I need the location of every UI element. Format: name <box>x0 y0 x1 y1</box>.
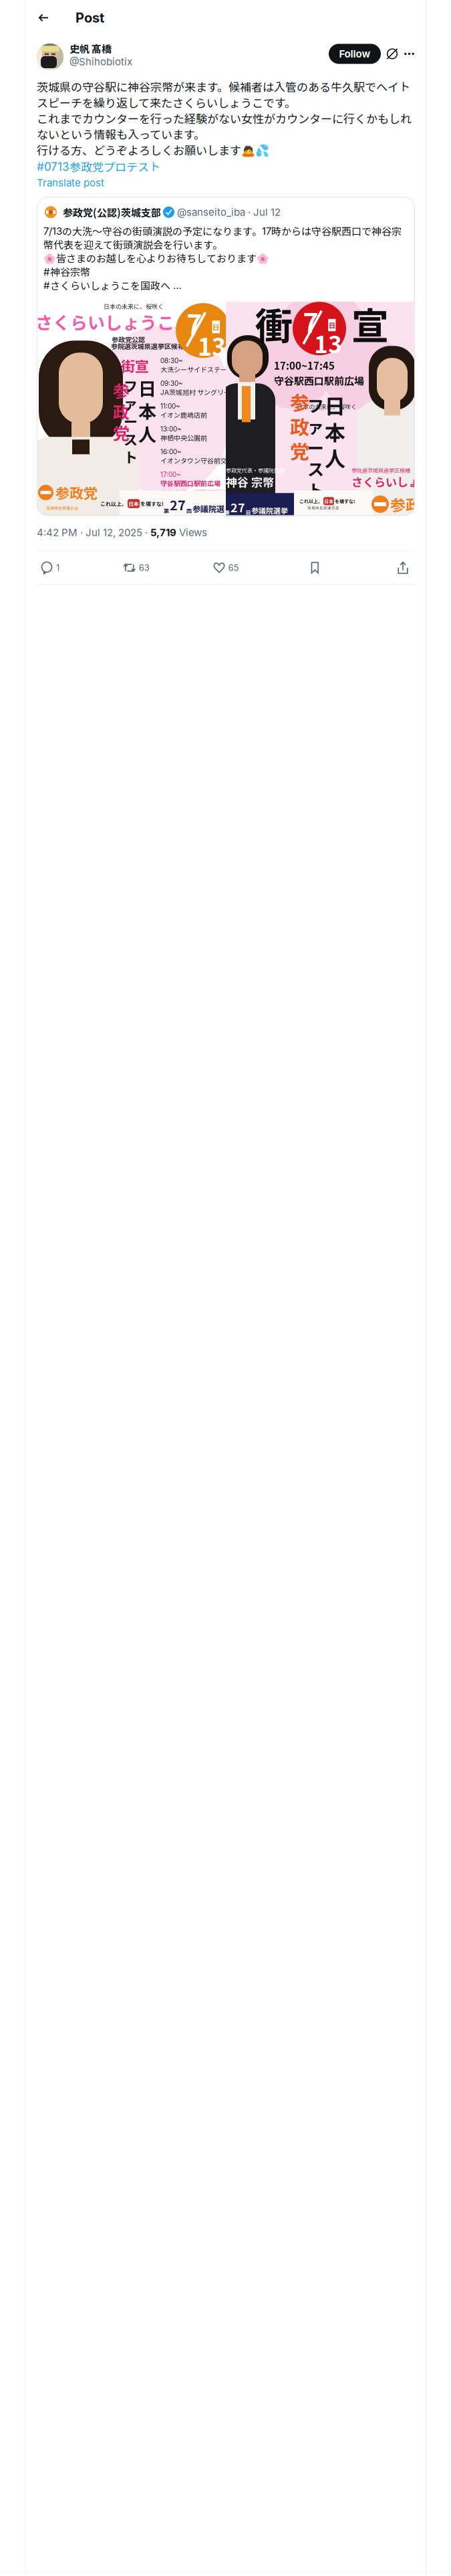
staticText: 参政党 <box>55 482 98 503</box>
staticText: さくらいしょうこ <box>351 473 442 490</box>
staticText: ァ <box>307 414 324 438</box>
staticText: 63 <box>139 562 150 573</box>
button[interactable]: Follow <box>329 44 381 64</box>
staticText: フ <box>307 393 324 417</box>
staticText: 本 <box>138 398 156 424</box>
staticText: 党 <box>113 420 130 445</box>
staticText: 日本 <box>128 500 139 508</box>
staticText: イオンタウン守谷前交差点 <box>160 456 241 465</box>
button[interactable]: Back <box>26 0 61 35</box>
staticText: 衝 <box>255 296 293 351</box>
staticText: 13 <box>314 326 342 360</box>
staticText: 4:42 PM · Jul 12, 2025 · <box>37 527 150 539</box>
staticText: 日本の未来に、桜咲く <box>297 402 357 411</box>
staticText: 第 <box>164 507 169 514</box>
staticText: 人 <box>138 420 156 447</box>
staticText: 日 <box>325 390 345 420</box>
staticText: 回 <box>246 509 251 516</box>
staticText: 日 <box>329 320 335 330</box>
staticText: 茨城県支部連合会 <box>46 505 78 511</box>
button[interactable]: Bookmark <box>303 556 327 580</box>
staticText: 回 <box>186 507 192 514</box>
staticText: 党 <box>290 437 309 465</box>
staticText: Post <box>76 10 104 26</box>
staticText: Translate post <box>37 177 104 189</box>
staticText: 13:00~ <box>160 425 182 433</box>
button[interactable]: Share <box>391 556 415 580</box>
staticText: ト <box>307 478 324 502</box>
staticText: 7 <box>186 303 202 343</box>
staticText: @sanseito_iba · Jul 12 <box>177 206 281 218</box>
staticText: 人 <box>325 443 345 473</box>
staticText: 守谷駅西口駅前広場 <box>274 373 364 388</box>
staticText: 09:30~ <box>160 379 183 387</box>
button[interactable]: 1 <box>41 556 59 580</box>
staticText: 27 <box>170 495 186 514</box>
staticText: 神谷 宗幣 <box>226 473 274 490</box>
staticText: @Shihobiotix <box>69 56 132 68</box>
staticText: Views <box>176 527 207 539</box>
staticText: 13 <box>198 328 226 363</box>
staticText: 参政党公認 <box>112 335 145 344</box>
staticText: これ以上、 <box>299 498 323 505</box>
button[interactable]: 65 <box>213 556 239 580</box>
staticText: 政 <box>290 412 309 440</box>
staticText: 7 <box>303 302 319 341</box>
staticText: 神谷宗幣 街頭演説会 <box>160 488 227 497</box>
staticText: 7/13の大洗〜守谷の街頭演説の予定になります。17時からは守谷駅西口で神谷宗幣… <box>43 223 402 292</box>
staticText: 16:00~ <box>160 448 182 456</box>
staticText: 08:30~ <box>160 357 183 365</box>
staticText: さくらいしょうこ <box>35 309 174 334</box>
staticText: 守谷駅西口駅前広場 <box>160 478 220 488</box>
staticText: 17:00~17:45 <box>274 358 335 372</box>
staticText: JA茨城旭村 サングリーン <box>160 387 237 397</box>
staticText: 日本 <box>324 498 333 505</box>
staticText: 参議院選 <box>192 503 224 514</box>
staticText: ス <box>124 429 138 449</box>
staticText: を壊すな! <box>335 498 355 505</box>
staticText: 参院選茨城県選挙区候補 <box>111 341 184 351</box>
staticText: ＊一部予定は変更になる場合もございます ご了承ください。 <box>160 503 237 514</box>
staticText: 日 <box>212 322 220 332</box>
staticText: 史帆 髙橋 <box>69 41 112 56</box>
staticText: 宣 <box>351 296 389 351</box>
staticText: 参政党(公認)茨城支部 <box>63 205 161 219</box>
staticText: ス <box>307 456 324 481</box>
button[interactable]: 63 <box>123 556 150 580</box>
staticText: 参政 <box>390 493 421 515</box>
staticText: を壊すな! <box>140 500 164 508</box>
button[interactable]: More <box>404 48 415 60</box>
staticText: ー <box>307 435 324 459</box>
button[interactable]: Grok actions <box>387 48 398 60</box>
staticText: 27 <box>231 498 245 516</box>
staticText: 日本の未来に、桜咲く <box>104 302 164 310</box>
staticText: 参院選茨城県選挙区候補 <box>351 466 410 474</box>
staticText: 街宣 <box>121 355 149 376</box>
staticText: 日 <box>138 375 156 401</box>
staticText: 政 <box>113 399 130 423</box>
staticText: 5,719 <box>150 527 176 539</box>
staticText: 神栖中央公園前 <box>160 433 207 442</box>
staticText: ァ <box>124 393 138 413</box>
staticText: #0713参政党プロテスト <box>37 158 160 175</box>
button[interactable]: 史帆 髙橋 <box>37 43 132 70</box>
button[interactable]: 参政党(公認)茨城支部 <box>37 197 415 516</box>
staticText: ー <box>124 411 138 431</box>
staticText: ト <box>124 447 138 467</box>
staticText: 参議院選挙 <box>251 505 288 516</box>
staticText: 本 <box>325 416 345 446</box>
staticText: 茨城県の守谷駅に神谷宗幣が来ます。候補者は入管のある牛久駅でヘイトスピーチを繰り… <box>37 78 412 158</box>
staticText: イオン鹿嶋店前 <box>160 410 207 420</box>
staticText: 1 <box>56 562 59 573</box>
staticText: 参 <box>290 387 309 415</box>
staticText: 11:00~ <box>160 402 180 410</box>
staticText: 17:00~ <box>160 471 181 479</box>
button[interactable]: Translate post <box>37 175 104 189</box>
staticText: 第 <box>225 509 230 516</box>
staticText: 参 <box>113 378 130 402</box>
staticText: Follow <box>339 48 370 60</box>
staticText: 大洗シーサイドステーション <box>160 364 247 374</box>
staticText: 65 <box>228 562 239 573</box>
staticText: これ以上、 <box>100 500 127 508</box>
staticText: フ <box>124 375 138 396</box>
